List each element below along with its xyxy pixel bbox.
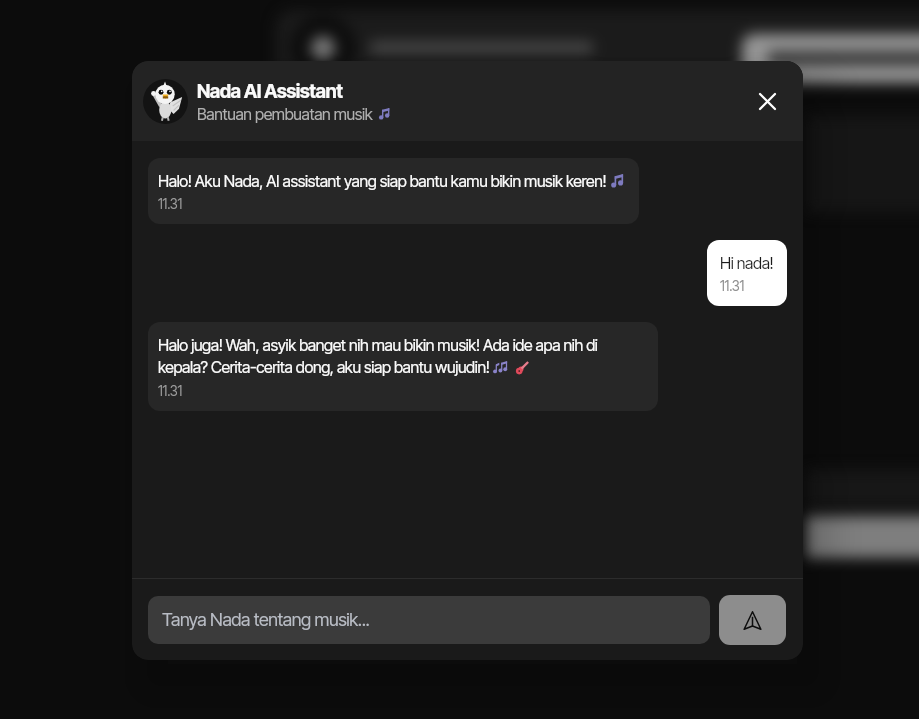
button[interactable]: Halo! Aku Nada, AI assistant yang siap b… <box>148 158 639 224</box>
staticText: Halo juga! Wah, asyik banget nih mau bik… <box>158 335 644 377</box>
staticText: 11.31 <box>720 278 745 294</box>
staticText: 11.31 <box>158 196 183 212</box>
staticText: Hi nada! <box>720 253 774 272</box>
button[interactable]: Send <box>719 595 786 645</box>
button[interactable]: Tanya Nada tentang musik... <box>148 596 710 644</box>
staticText: Halo! Aku Nada, AI assistant yang siap b… <box>158 171 625 190</box>
button[interactable]: Close <box>750 84 784 118</box>
staticText: Nada AI Assistant <box>197 80 343 103</box>
staticText: Bantuan pembuatan musik <box>197 104 373 123</box>
staticText: Tanya Nada tentang musik... <box>162 609 370 631</box>
staticText: 11.31 <box>158 383 183 399</box>
button[interactable]: Hi nada! <box>707 240 787 306</box>
button[interactable]: Halo juga! Wah, asyik banget nih mau bik… <box>148 322 658 411</box>
